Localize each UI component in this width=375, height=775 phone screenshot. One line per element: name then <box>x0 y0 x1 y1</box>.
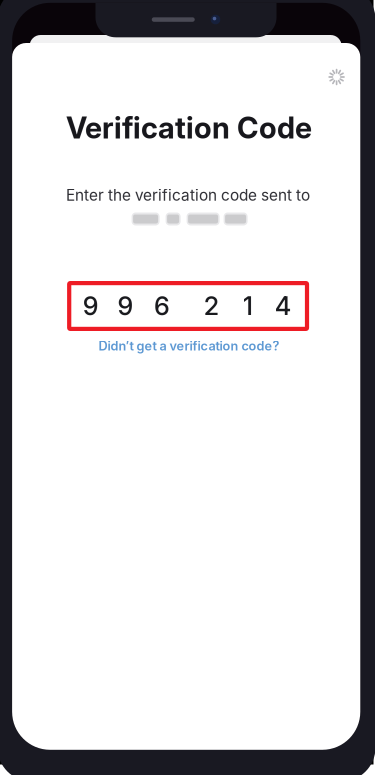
staticText: 6 <box>154 291 170 321</box>
staticText: Enter the verification code sent to <box>66 186 310 205</box>
staticText: 9 <box>83 291 99 321</box>
staticText: 2 <box>204 291 219 321</box>
staticText: Verification Code <box>66 110 312 145</box>
staticText: 1 <box>243 291 253 321</box>
staticText: 9 <box>117 291 133 321</box>
button[interactable]: Didn’t get a verification code? <box>89 337 289 355</box>
staticText: 4 <box>275 291 291 321</box>
staticText: Didn’t get a verification code? <box>99 338 280 354</box>
